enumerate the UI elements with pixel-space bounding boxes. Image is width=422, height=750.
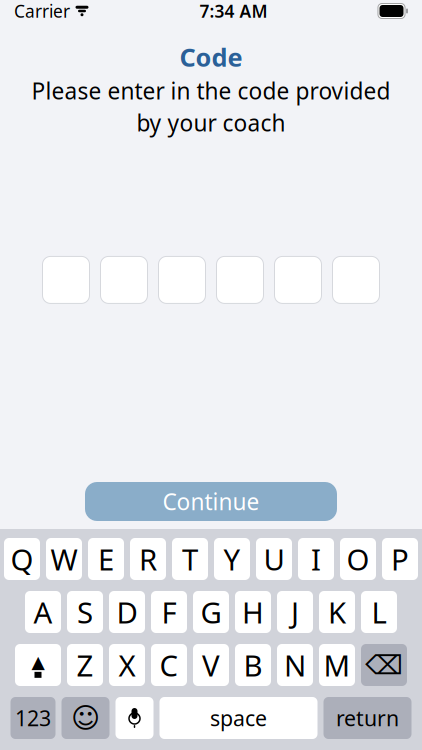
button[interactable]: J [277, 591, 313, 633]
button[interactable]: Code digit [216, 256, 263, 303]
staticText: K [328, 592, 346, 631]
button[interactable]: B [235, 644, 271, 686]
button[interactable]: F [151, 591, 187, 633]
button[interactable]: Code digit [100, 256, 147, 303]
staticText: D [116, 592, 137, 631]
staticText: J [291, 592, 299, 631]
staticText: P [391, 539, 409, 578]
button[interactable]: Z [67, 644, 103, 686]
button[interactable]: return [323, 697, 411, 739]
button[interactable]: Q [4, 538, 40, 580]
staticText: space [210, 704, 267, 732]
staticText: B [243, 645, 262, 684]
button[interactable]: Y [214, 538, 250, 580]
button[interactable]: D [109, 591, 145, 633]
button[interactable]: V [193, 644, 229, 686]
staticText: A [33, 592, 52, 631]
staticText: X [118, 645, 135, 684]
staticText: Carrier [14, 0, 70, 22]
button[interactable]: E [88, 538, 124, 580]
staticText: Q [10, 539, 33, 578]
staticText: G [200, 592, 221, 631]
button[interactable]: U [256, 538, 292, 580]
staticText: N [284, 645, 306, 684]
button[interactable]: Delete [361, 644, 407, 686]
button[interactable]: I [298, 538, 334, 580]
staticText: Y [223, 539, 240, 578]
staticText: O [346, 539, 369, 578]
button[interactable]: K [319, 591, 355, 633]
button[interactable]: Emoji [61, 697, 109, 739]
button[interactable]: O [340, 538, 376, 580]
staticText: Please enter in the code provided [31, 76, 390, 106]
staticText: S [77, 592, 93, 631]
staticText: Z [76, 645, 93, 684]
button[interactable]: T [172, 538, 208, 580]
staticText: return [336, 704, 399, 732]
staticText: by your coach [136, 108, 285, 138]
button[interactable]: M [319, 644, 355, 686]
button[interactable]: S [67, 591, 103, 633]
staticText: T [182, 539, 198, 578]
button[interactable]: H [235, 591, 271, 633]
staticText: V [202, 645, 220, 684]
staticText: W [50, 539, 77, 578]
staticText: 123 [15, 704, 51, 732]
button[interactable]: Code digit [42, 256, 89, 303]
button[interactable]: R [130, 538, 166, 580]
staticText: ▲ [31, 652, 44, 672]
staticText: Continue [162, 486, 259, 516]
staticText: ⌫ [365, 650, 403, 680]
button[interactable]: Code digit [274, 256, 321, 303]
button[interactable]: 123 [10, 697, 55, 739]
button[interactable]: Continue [85, 482, 337, 521]
button[interactable]: Dictation [115, 697, 153, 739]
staticText: ☺ [71, 702, 100, 734]
staticText: 7:34 AM [199, 0, 267, 22]
button[interactable]: space [159, 697, 317, 739]
button[interactable]: Shift [15, 644, 61, 686]
staticText: Code [179, 40, 242, 74]
staticText: E [98, 539, 114, 578]
button[interactable]: P [382, 538, 418, 580]
staticText: H [242, 592, 264, 631]
button[interactable]: A [25, 591, 61, 633]
button[interactable]: C [151, 644, 187, 686]
staticText: R [139, 539, 157, 578]
staticText: C [159, 645, 178, 684]
staticText: M [323, 645, 350, 684]
staticText: F [161, 592, 176, 631]
staticText: U [263, 539, 284, 578]
button[interactable]: Code digit [332, 256, 379, 303]
button[interactable]: W [46, 538, 82, 580]
button[interactable]: N [277, 644, 313, 686]
staticText: I [311, 539, 321, 578]
button[interactable]: X [109, 644, 145, 686]
button[interactable]: L [361, 591, 397, 633]
staticText: L [371, 592, 386, 631]
button[interactable]: G [193, 591, 229, 633]
button[interactable]: Code digit [158, 256, 205, 303]
